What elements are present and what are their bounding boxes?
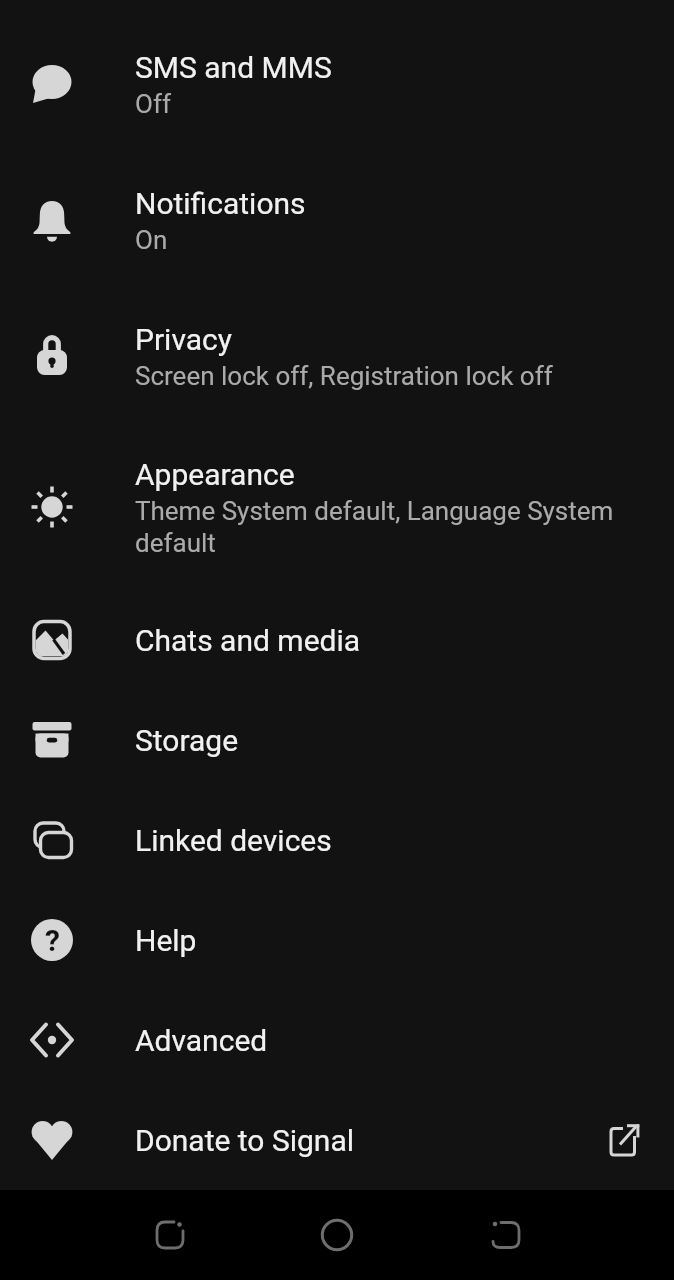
staticText: Privacy <box>135 322 232 357</box>
staticText: Appearance <box>135 457 295 492</box>
button[interactable]: Chats and media <box>0 590 674 690</box>
staticText: Donate to Signal <box>135 1123 355 1158</box>
staticText: Off <box>135 89 171 119</box>
button[interactable]: Donate to Signal <box>0 1090 674 1190</box>
button[interactable] <box>309 1207 365 1263</box>
button[interactable] <box>478 1207 534 1263</box>
button[interactable]: Storage <box>0 690 674 790</box>
button[interactable]: Linked devices <box>0 790 674 890</box>
button[interactable]: Privacy <box>0 288 674 424</box>
staticText: Notifications <box>135 186 306 221</box>
staticText: ? <box>45 923 60 958</box>
button[interactable]: Notifications <box>0 152 674 288</box>
button[interactable]: Advanced <box>0 990 674 1090</box>
button[interactable]: SMS and MMS <box>0 16 674 152</box>
staticText: Theme System default, Language System de… <box>135 496 638 558</box>
button[interactable]: ? <box>0 890 674 990</box>
staticText: Advanced <box>135 1023 268 1058</box>
staticText: SMS and MMS <box>135 50 332 85</box>
button[interactable]: Appearance <box>0 424 674 590</box>
staticText: Chats and media <box>135 623 361 658</box>
button[interactable] <box>142 1207 198 1263</box>
staticText: Screen lock off, Registration lock off <box>135 361 553 391</box>
staticText: Storage <box>135 723 239 758</box>
staticText: Linked devices <box>135 823 332 858</box>
staticText: Help <box>135 923 197 958</box>
staticText: On <box>135 225 168 255</box>
